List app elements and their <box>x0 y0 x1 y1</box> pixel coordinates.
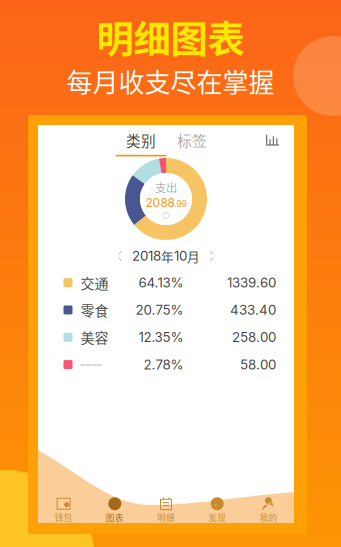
staticText: 每月收支尽在掌握 <box>66 62 274 100</box>
staticText: 433.40 <box>230 302 276 318</box>
staticText: 10 <box>174 248 187 264</box>
staticText: 2.78% <box>143 356 183 373</box>
button[interactable]: 类别 <box>115 129 166 156</box>
staticText: 我的 <box>259 511 277 524</box>
button[interactable]: Previous month <box>107 241 132 270</box>
button[interactable]: 发现 <box>192 492 243 522</box>
staticText: 钱包 <box>55 511 73 523</box>
staticText: 明细图表 <box>96 10 244 64</box>
staticText: 12.35% <box>138 329 183 345</box>
button[interactable]: 标签 <box>166 129 217 156</box>
button[interactable]: 钱包 <box>38 492 89 522</box>
staticText: 发现 <box>208 511 226 524</box>
staticText: 20.75% <box>135 302 183 318</box>
staticText: 图表 <box>106 511 124 524</box>
button[interactable]: 明细 <box>140 492 192 522</box>
button[interactable]: 图表 <box>89 492 140 522</box>
staticText: 58.00 <box>240 356 276 373</box>
staticText: —— <box>80 358 102 371</box>
staticText: 零食 <box>80 300 108 320</box>
staticText: 美容 <box>80 327 108 347</box>
button[interactable]: Bar chart <box>266 135 294 151</box>
staticText: 64.13% <box>138 275 183 291</box>
staticText: 支出 <box>155 179 177 195</box>
staticText: 年 <box>161 247 174 265</box>
staticText: 月 <box>187 247 200 265</box>
staticText: 类别 <box>126 129 156 151</box>
staticText: 明细 <box>157 511 175 524</box>
staticText: 258.00 <box>232 329 276 345</box>
staticText: 2088 <box>145 195 174 210</box>
button[interactable]: 我的 <box>243 492 294 522</box>
staticText: .99 <box>174 199 186 209</box>
button[interactable]: Next month <box>200 241 225 270</box>
staticText: 标签 <box>177 129 207 151</box>
staticText: 2018 <box>132 248 161 264</box>
staticText: 交通 <box>80 272 108 293</box>
staticText: 1339.60 <box>227 275 276 291</box>
